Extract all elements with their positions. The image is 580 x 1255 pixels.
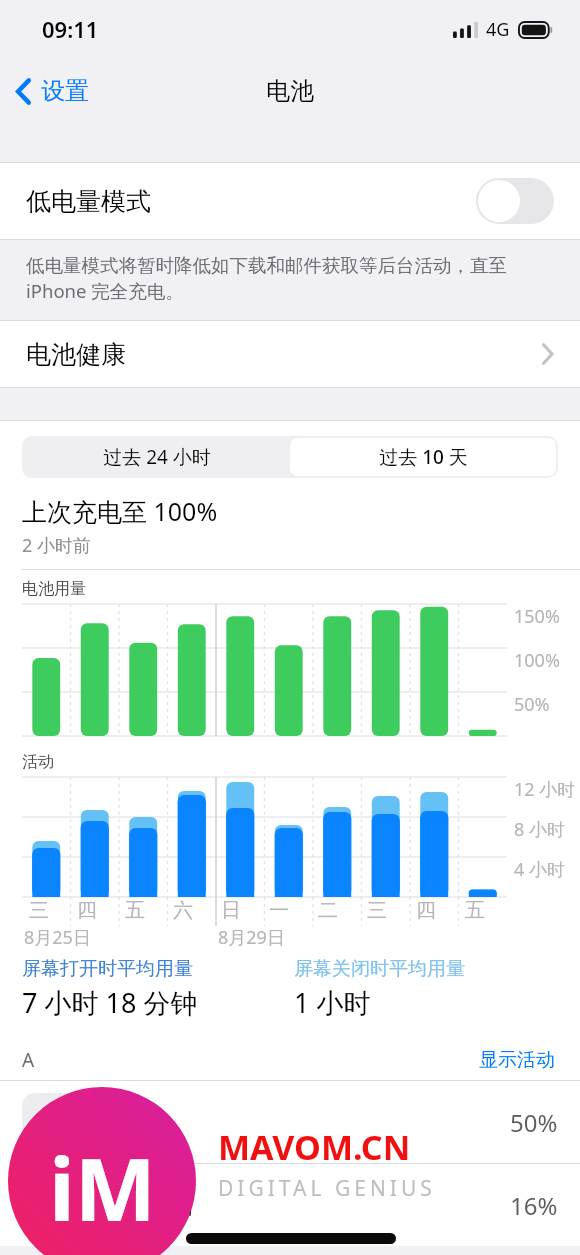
staticText: 12 小时 [514,777,576,802]
staticText: 三 [367,898,387,923]
staticText: 一 [269,898,289,923]
button[interactable]: 显示活动 [476,1045,558,1075]
button[interactable]: 过去 24 小时 [24,438,290,476]
button[interactable]: 电池健康 [0,321,580,387]
staticText: 日 [221,898,241,923]
staticText: 电池用量 [22,579,86,599]
staticText: 50% [514,692,550,717]
staticText: A [22,1047,476,1073]
staticText: 过去 10 天 [379,444,468,470]
staticText: 8 小时 [514,817,565,842]
staticText: 电池健康 [26,339,541,370]
button[interactable]: 过去 10 天 [290,438,556,476]
staticText: 8月29日 [218,925,285,950]
staticText: 三 [29,898,49,923]
staticText: 二 [318,898,338,923]
staticText: 7 小时 18 分钟 [22,984,198,1021]
staticText: 四 [416,898,436,923]
staticText: 4G [486,17,510,42]
staticText: 过去 24 小时 [103,444,211,470]
staticText: 蓝铲之战 [96,1190,510,1220]
button[interactable]: Low Power Mode toggle, off [476,178,554,224]
staticText: 150% [514,604,560,629]
staticText: DIGITAL GENIUS [218,1174,436,1203]
staticText: 五 [125,898,145,923]
staticText: 屏幕打开时平均用量 [22,957,193,981]
staticText: 100% [514,648,560,673]
staticText: 屏幕关闭时平均用量 [294,957,465,981]
button[interactable]: 低电量模式 [0,163,580,239]
staticText: 五 [465,898,485,923]
staticText: 显示活动 [479,1048,555,1072]
staticText: iM [49,1129,156,1246]
staticText: MAVOM.CN [218,1124,411,1170]
staticText [96,1106,510,1139]
staticText: 电池 [266,76,314,106]
button[interactable]: 设置 [0,68,103,114]
staticText: 09:11 [42,14,99,44]
staticText: 六 [173,898,193,923]
staticText: 活动 [22,752,54,772]
staticText: 低电量模式 [26,186,476,217]
staticText: 2 小时前 [22,533,91,558]
staticText: 16% [510,1189,558,1222]
staticText: 8月25日 [24,925,91,950]
staticText: 4 小时 [514,857,565,882]
staticText: 四 [77,898,97,923]
staticText: 50% [510,1106,558,1139]
staticText: 设置 [41,76,89,106]
button[interactable]: 50% [0,1081,580,1163]
button[interactable]: 蓝铲之战 [0,1164,580,1246]
staticText: 上次充电至 100% [22,494,218,528]
staticText: 低电量模式将暂时降低如下载和邮件获取等后台活动，直至 iPhone 完全充电。 [26,252,556,304]
staticText: 1 小时 [294,984,371,1021]
